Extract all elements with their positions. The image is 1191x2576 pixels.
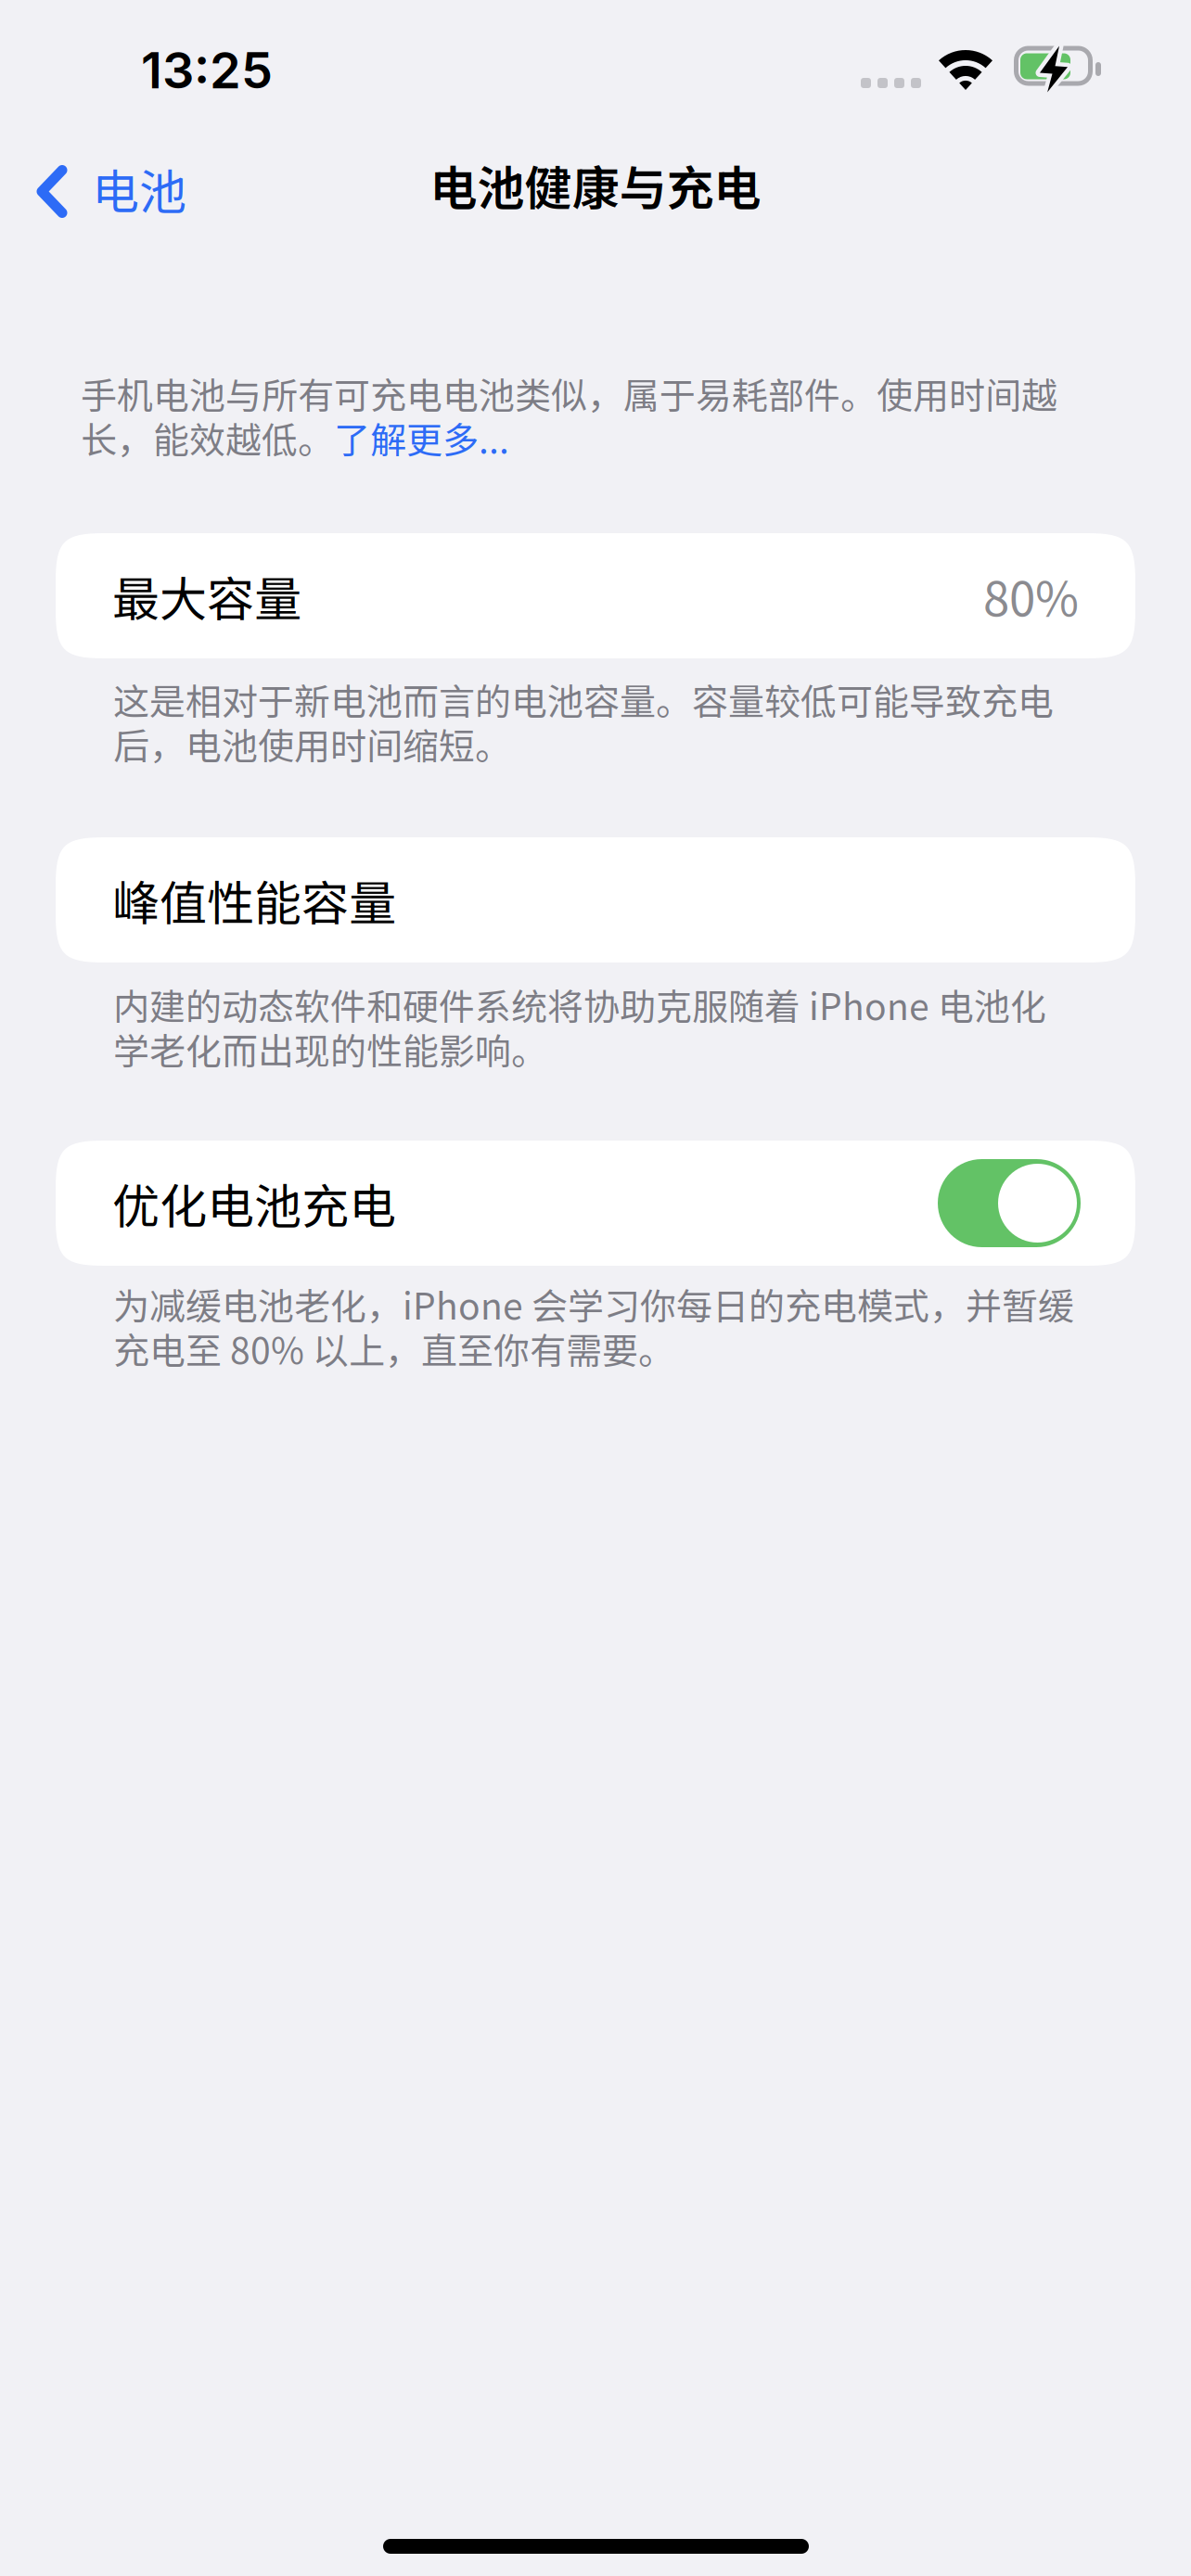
staticText: 优化电池充电 bbox=[112, 1169, 396, 1237]
button[interactable]: 峰值性能容量 bbox=[56, 837, 1135, 963]
staticText: 了解更多... bbox=[334, 412, 509, 464]
button[interactable]: 了解更多... bbox=[334, 412, 509, 464]
staticText: 80% bbox=[983, 562, 1079, 630]
staticText: 为减缓电池老化，iPhone 会学习你每日的充电模式，并暂缓 bbox=[113, 1278, 1074, 1330]
staticText: 峰值性能容量 bbox=[112, 866, 396, 934]
staticText: 13:25 bbox=[141, 40, 273, 100]
staticText: 内建的动态软件和硬件系统将协助克服随着 iPhone 电池化 bbox=[113, 978, 1046, 1030]
staticText: 后，电池使用时间缩短。 bbox=[113, 718, 511, 770]
staticText: 最大容量 bbox=[112, 562, 301, 630]
staticText: 长，能效越低。 bbox=[81, 412, 334, 464]
button[interactable]: 电池 bbox=[0, 151, 211, 219]
staticText: 充电至 80% 以上，直至你有需要。 bbox=[113, 1322, 674, 1375]
staticText: 电池健康与充电 bbox=[430, 151, 761, 219]
staticText: 电池 bbox=[92, 154, 186, 223]
button[interactable]: 优化电池充电 bbox=[938, 1159, 1081, 1247]
button[interactable]: 最大容量 bbox=[56, 533, 1135, 658]
staticText: 这是相对于新电池而言的电池容量。容量较低可能导致充电 bbox=[113, 673, 1054, 725]
staticText: 学老化而出现的性能影响。 bbox=[113, 1023, 547, 1075]
staticText: 手机电池与所有可充电电池类似，属于易耗部件。使用时间越 bbox=[81, 367, 1057, 419]
